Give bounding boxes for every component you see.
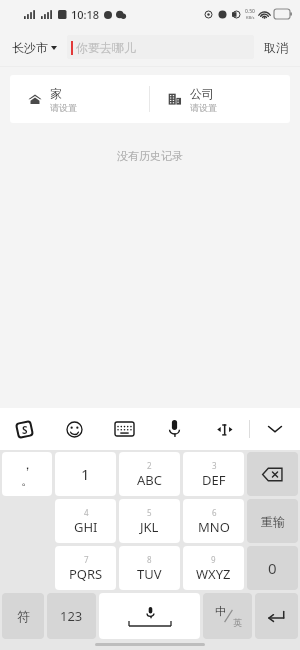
button[interactable]: Backspace <box>247 452 298 496</box>
staticText: 英 <box>233 617 242 628</box>
button[interactable]: 重输 <box>247 499 298 543</box>
button[interactable]: Sogou input <box>0 408 49 450</box>
button[interactable]: 家 <box>10 75 149 123</box>
staticText: 2 <box>147 460 152 471</box>
staticText: 9 <box>211 554 216 565</box>
staticText: 10:18 <box>71 7 100 22</box>
staticText: 符 <box>17 608 30 624</box>
staticText: 123 <box>60 607 83 625</box>
staticText: 重输 <box>261 514 285 529</box>
staticText: TUV <box>137 565 162 583</box>
button[interactable]: Enter <box>255 593 298 639</box>
button[interactable]: 长沙市 <box>10 36 59 59</box>
button[interactable]: Emoji <box>49 408 99 450</box>
button[interactable]: 0 <box>247 546 298 590</box>
staticText: 请设置 <box>190 102 217 113</box>
staticText: 0.50 <box>245 8 255 15</box>
button[interactable]: 8 <box>119 546 180 590</box>
staticText: PQRS <box>69 565 103 583</box>
staticText: 5 <box>147 507 152 518</box>
staticText: 中 <box>215 604 226 618</box>
staticText: 长沙市 <box>12 40 48 55</box>
button[interactable]: 7 <box>55 546 116 590</box>
button[interactable]: 3 <box>183 452 244 496</box>
button[interactable]: 你要去哪儿 <box>67 35 254 59</box>
button[interactable]: 4 <box>55 499 116 543</box>
button[interactable]: Space, voice input <box>99 593 200 639</box>
button[interactable]: 公司 <box>150 75 290 123</box>
staticText: 8 <box>147 554 152 565</box>
staticText: DEF <box>202 471 226 489</box>
staticText: 你要去哪儿 <box>76 40 136 55</box>
button[interactable]: Voice input <box>149 408 199 450</box>
staticText: 4 <box>84 507 89 518</box>
button[interactable]: Move cursor <box>199 408 249 450</box>
staticText: 公司 <box>190 86 214 101</box>
staticText: KB/s <box>246 15 255 20</box>
staticText: 家 <box>50 86 62 101</box>
button[interactable]: 取消 <box>262 36 290 59</box>
button[interactable]: 9 <box>183 546 244 590</box>
button[interactable]: 符 <box>2 593 44 639</box>
staticText: 没有历史记录 <box>117 149 183 163</box>
staticText: ， <box>21 456 34 472</box>
staticText: 1 <box>81 464 90 484</box>
staticText: 3 <box>212 460 217 471</box>
staticText: S <box>22 423 28 437</box>
button[interactable]: 1 <box>55 452 116 496</box>
staticText: JKL <box>140 518 159 536</box>
staticText: 6 <box>212 507 217 518</box>
button[interactable]: 6 <box>183 499 244 543</box>
button[interactable]: 2 <box>119 452 180 496</box>
button[interactable]: Keyboard layout <box>99 408 149 450</box>
staticText: 。 <box>21 472 34 488</box>
staticText: 请设置 <box>50 102 77 113</box>
staticText: WXYZ <box>196 565 231 583</box>
button[interactable]: Hide keyboard <box>250 408 300 450</box>
button[interactable]: ， <box>2 452 52 496</box>
staticText: MNO <box>198 518 230 536</box>
button[interactable]: 5 <box>119 499 180 543</box>
staticText: ABC <box>137 471 162 489</box>
staticText: GHI <box>74 518 98 536</box>
staticText: 7 <box>84 554 89 565</box>
staticText: 0 <box>268 558 277 578</box>
button[interactable]: 中 <box>203 593 252 639</box>
button[interactable]: 123 <box>47 593 96 639</box>
staticText: 取消 <box>264 40 288 55</box>
